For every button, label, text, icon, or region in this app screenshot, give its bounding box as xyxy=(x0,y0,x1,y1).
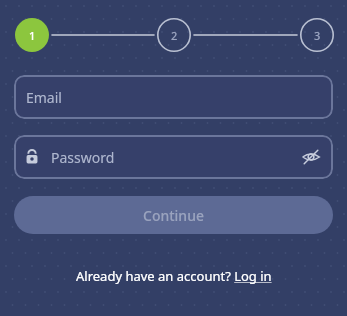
button[interactable]: 2 xyxy=(157,18,191,52)
staticText: Already have an account? Log in xyxy=(76,267,272,285)
button[interactable]: Continue xyxy=(14,196,333,234)
staticText: Continue xyxy=(143,206,204,225)
button[interactable]: 3 xyxy=(300,18,334,52)
button[interactable]: Email xyxy=(14,75,333,119)
staticText: 3 xyxy=(314,28,321,43)
button[interactable]: Password xyxy=(14,135,333,179)
staticText: Email xyxy=(26,88,62,107)
staticText: 2 xyxy=(171,28,178,43)
button[interactable]: Already have an account? Log in xyxy=(70,264,278,288)
staticText: Password xyxy=(51,148,115,167)
button[interactable]: 1 xyxy=(15,18,49,52)
button[interactable]: Show password xyxy=(299,145,323,169)
staticText: 1 xyxy=(29,28,36,43)
